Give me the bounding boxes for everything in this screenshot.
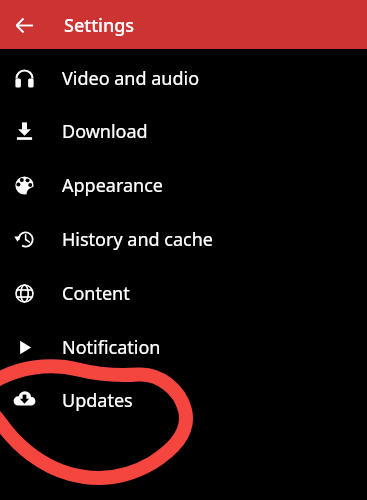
- button[interactable]: Download: [0, 104, 367, 158]
- button[interactable]: Content: [0, 266, 367, 320]
- button[interactable]: Notification: [0, 320, 367, 374]
- button[interactable]: Back: [0, 2, 48, 49]
- staticText: Settings: [64, 13, 135, 38]
- staticText: Updates: [62, 388, 133, 413]
- button[interactable]: Updates: [0, 373, 367, 427]
- staticText: Video and audio: [62, 66, 200, 91]
- button[interactable]: History and cache: [0, 212, 367, 266]
- staticText: Notification: [62, 335, 161, 360]
- staticText: Appearance: [62, 173, 163, 198]
- staticText: Download: [62, 119, 148, 144]
- staticText: Content: [62, 281, 130, 306]
- button[interactable]: Appearance: [0, 158, 367, 212]
- button[interactable]: Video and audio: [0, 51, 367, 105]
- staticText: History and cache: [62, 227, 213, 252]
